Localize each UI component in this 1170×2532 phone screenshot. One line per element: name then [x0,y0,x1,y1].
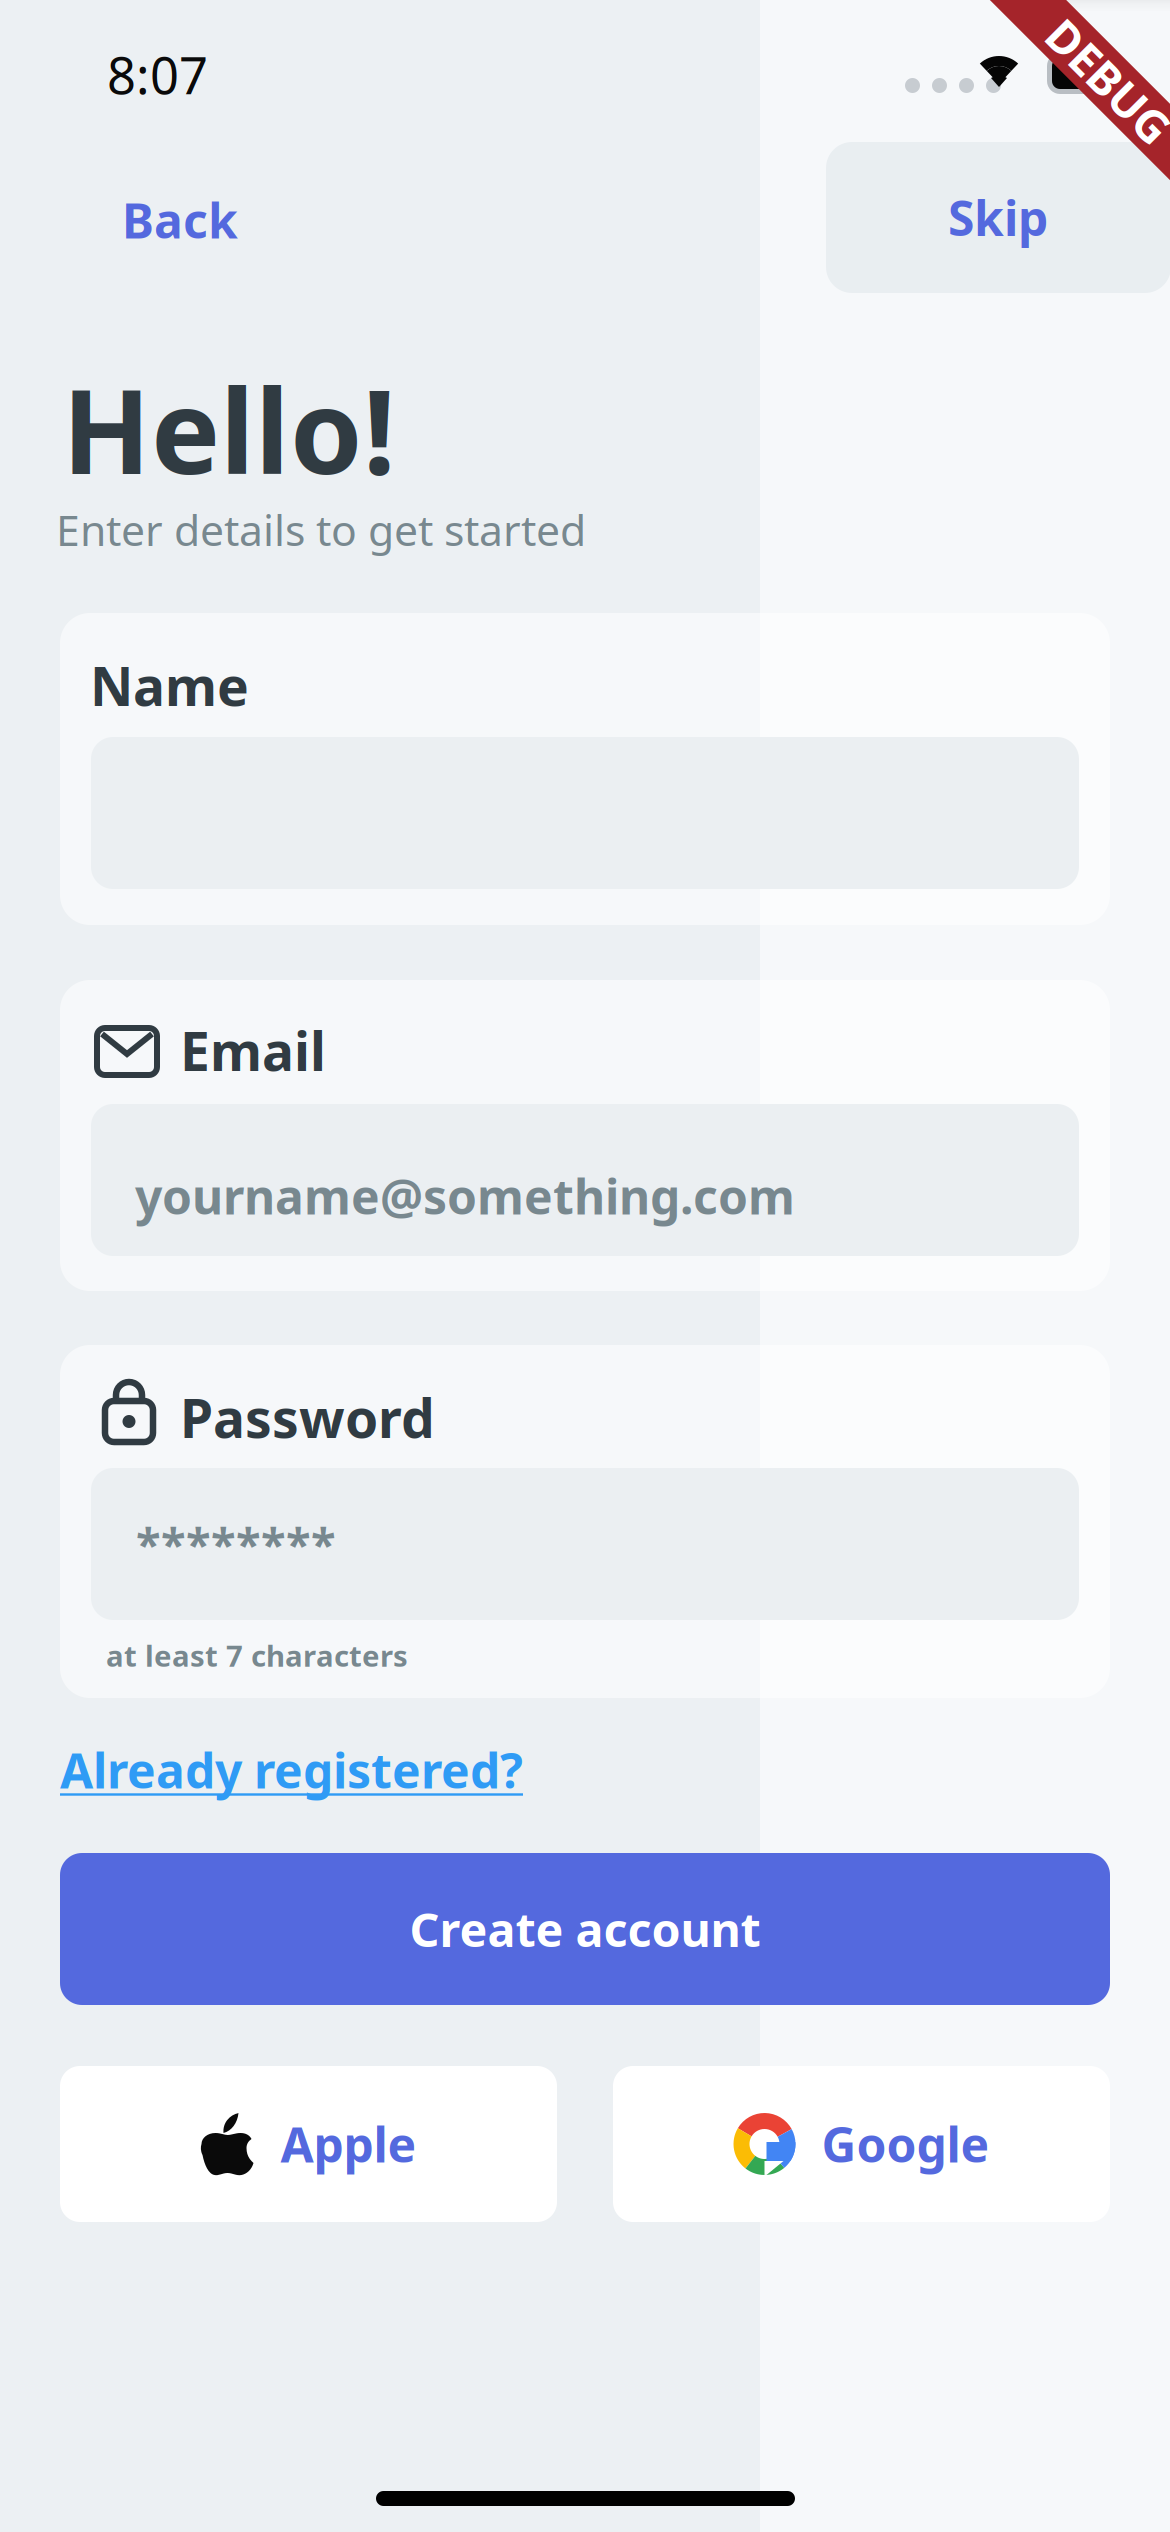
staticText: Enter details to get started [56,501,586,558]
staticText: Email [180,1015,326,1086]
staticText: yourname@something.com [135,1164,795,1228]
staticText: Name [90,650,249,721]
staticText: DEBUG [1031,51,1170,111]
staticText: 8:07 [107,41,208,108]
button[interactable]: Already registered? [60,1728,523,1812]
staticText: Apple [280,2112,416,2176]
staticText: Hello! [62,352,396,506]
staticText: Already registered? [60,1738,523,1802]
staticText: Google [821,2112,989,2176]
button[interactable]: Google [613,2066,1110,2222]
button[interactable]: Back [92,160,268,280]
staticText: Back [122,188,238,252]
staticText: ******** [136,1513,336,1573]
button[interactable]: Create account [60,1853,1110,2005]
staticText: Password [180,1382,435,1453]
button[interactable]: Skip [826,142,1170,293]
staticText: Create account [409,1898,760,1960]
staticText: Skip [948,186,1048,249]
button[interactable]: Apple [60,2066,557,2222]
staticText: at least 7 characters [106,1636,408,1675]
